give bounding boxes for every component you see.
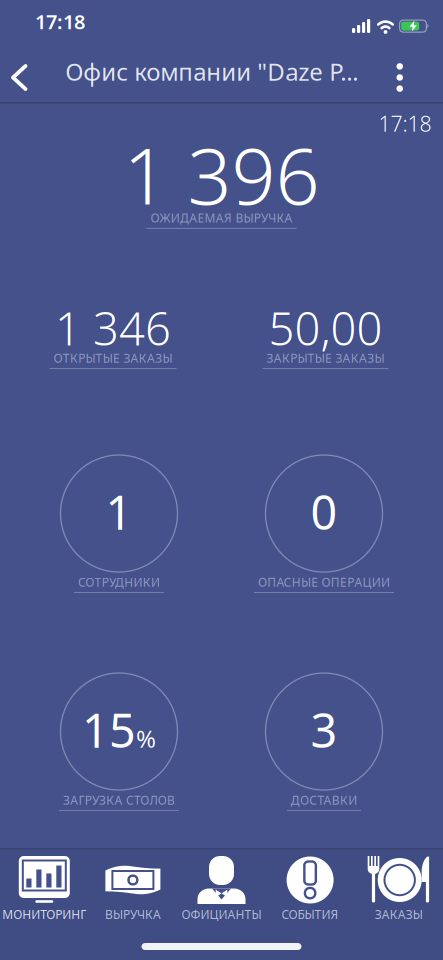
- staticText: 50,00: [268, 298, 382, 358]
- staticText: ЗАКАЗЫ: [375, 906, 423, 922]
- staticText: 17:18: [35, 8, 85, 35]
- staticText: %: [136, 722, 156, 754]
- staticText: ВЫРУЧКА: [105, 906, 161, 922]
- button[interactable]: Back: [0, 48, 41, 102]
- button[interactable]: 50,00: [263, 298, 388, 369]
- staticText: ОПАСНЫЕ ОПЕРАЦИИ: [258, 574, 390, 590]
- staticText: ОТКРЫТЫЕ ЗАКАЗЫ: [54, 350, 172, 366]
- staticText: 1 346: [55, 298, 171, 358]
- button[interactable]: ВЫРУЧКА: [89, 855, 177, 922]
- staticText: 1 396: [123, 123, 319, 226]
- button[interactable]: 15: [59, 673, 179, 811]
- button[interactable]: ЗАКАЗЫ: [354, 855, 443, 922]
- button[interactable]: 1 396: [123, 123, 319, 229]
- staticText: ЗАГРУЗКА СТОЛОВ: [63, 792, 175, 808]
- button[interactable]: МОНИТОРИНГ: [0, 855, 89, 922]
- button[interactable]: СОБЫТИЯ: [266, 855, 354, 922]
- staticText: ДОСТАВКИ: [291, 792, 357, 808]
- staticText: СОТРУДНИКИ: [78, 574, 160, 590]
- staticText: ОЖИДАЕМАЯ ВЫРУЧКА: [150, 210, 293, 226]
- staticText: 3: [310, 698, 337, 760]
- button[interactable]: 3: [265, 673, 382, 811]
- staticText: 0: [310, 480, 337, 542]
- staticText: 17:18: [378, 109, 431, 138]
- staticText: 1: [105, 480, 132, 542]
- staticText: СОБЫТИЯ: [282, 906, 339, 922]
- button[interactable]: 1 346: [50, 298, 176, 369]
- button[interactable]: ОФИЦИАНТЫ: [177, 855, 266, 922]
- button[interactable]: More options: [382, 48, 443, 102]
- staticText: 15: [82, 698, 136, 760]
- button[interactable]: 1: [60, 455, 177, 593]
- staticText: Офис компании "Daze P...: [65, 56, 358, 87]
- staticText: МОНИТОРИНГ: [2, 906, 86, 922]
- staticText: ЗАКРЫТЫЕ ЗАКАЗЫ: [267, 350, 384, 366]
- button[interactable]: 0: [254, 455, 394, 593]
- staticText: ОФИЦИАНТЫ: [181, 906, 261, 922]
